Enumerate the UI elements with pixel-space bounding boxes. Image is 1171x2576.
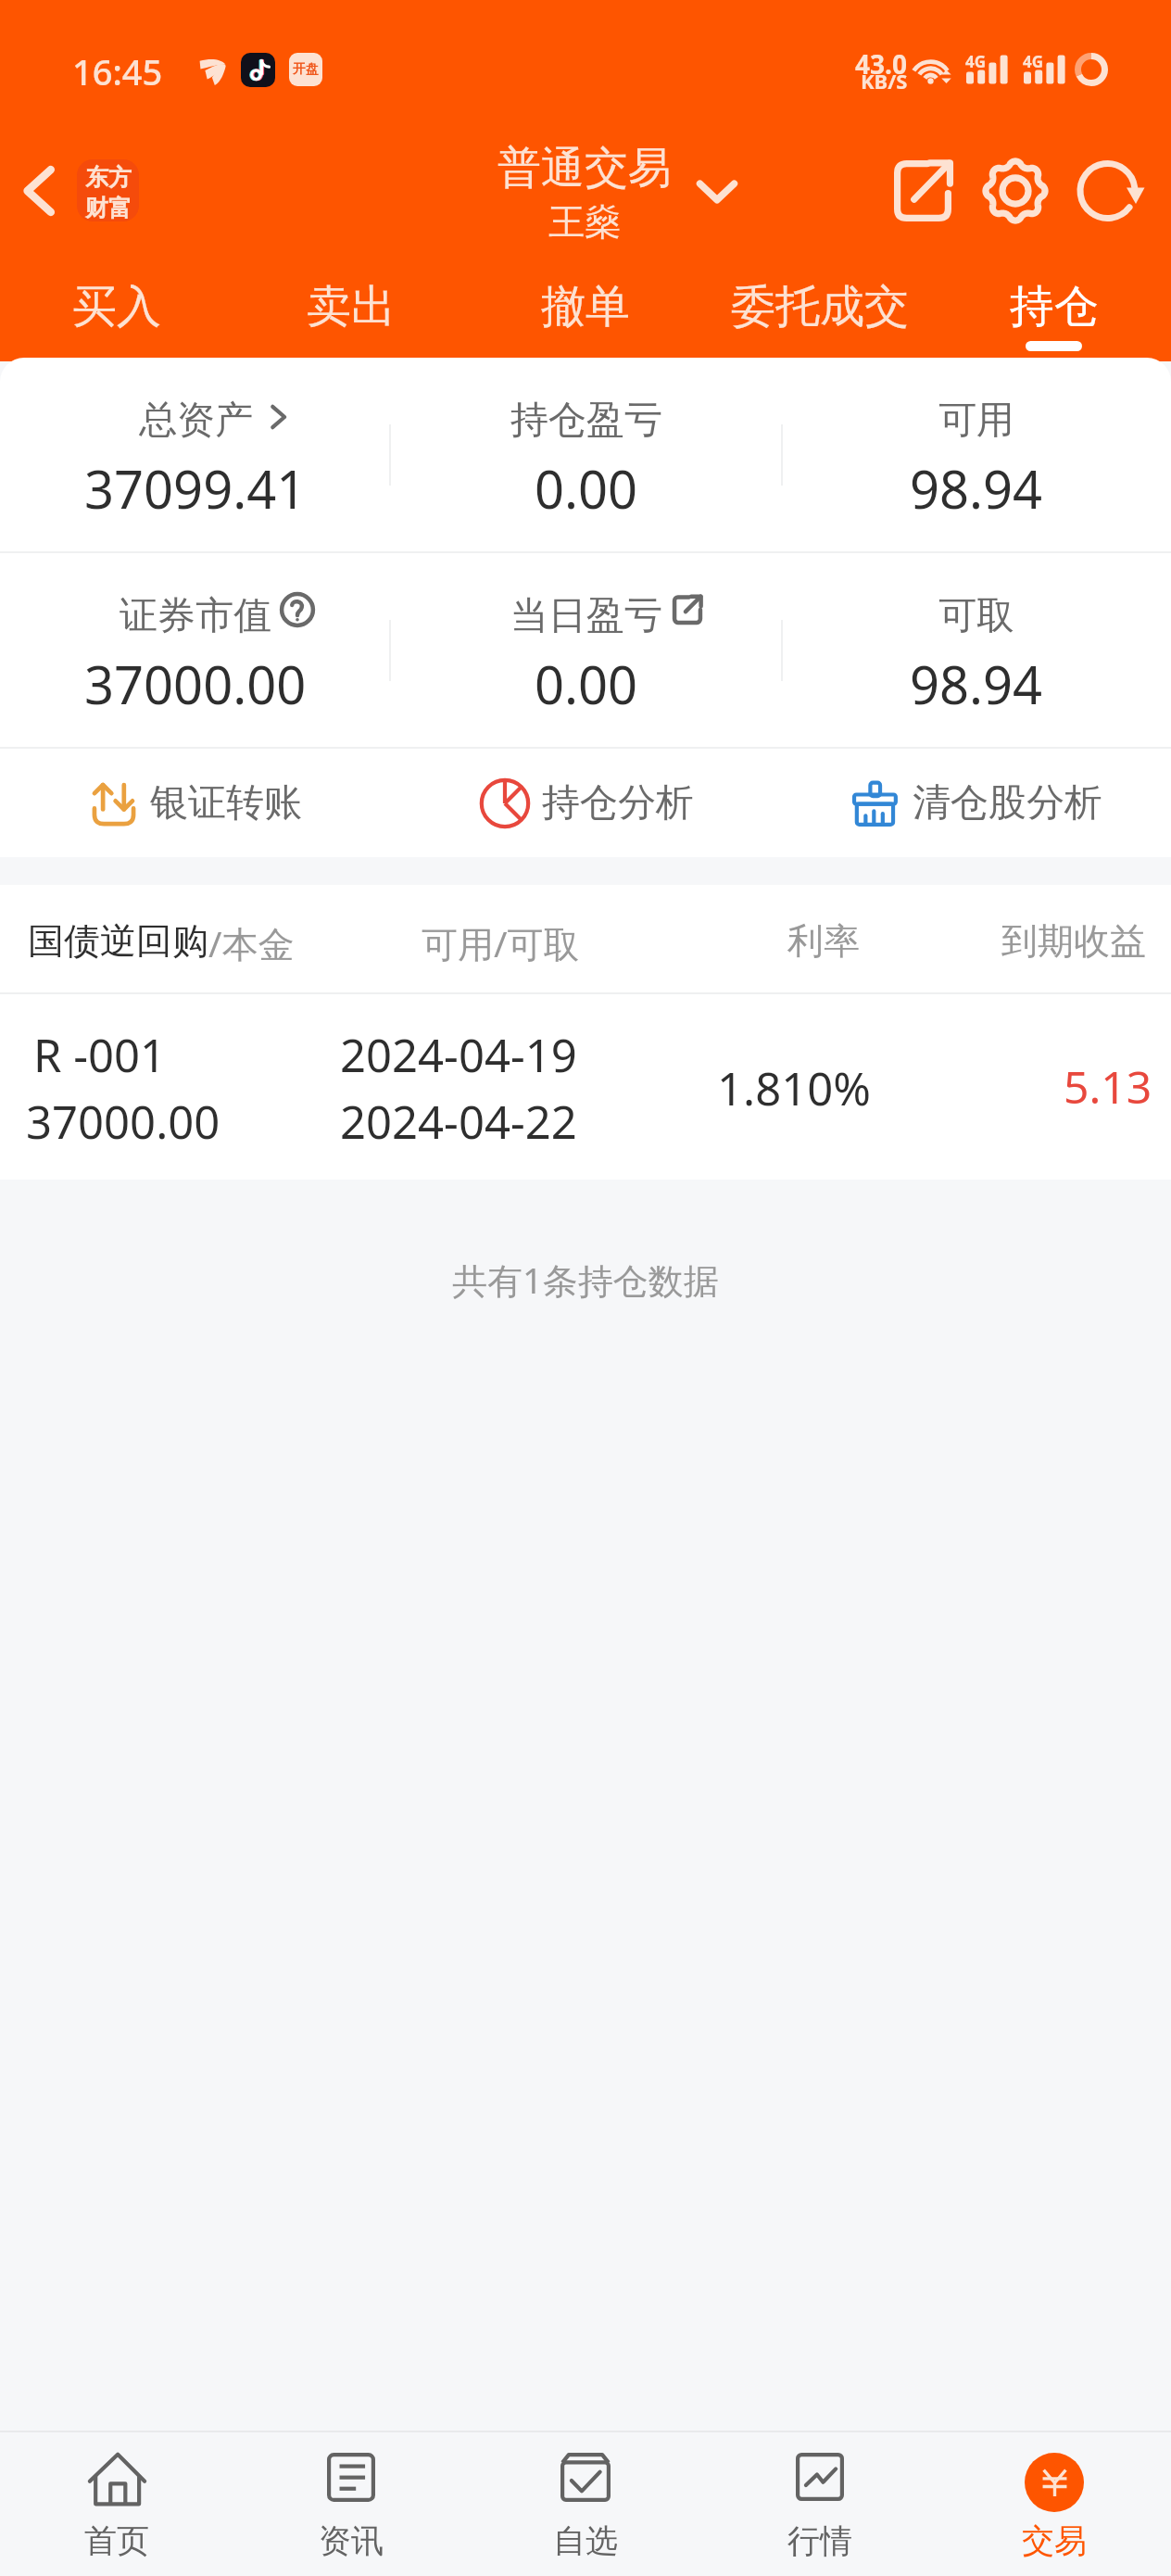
button[interactable]: Settings — [974, 149, 1057, 233]
staticText: 总资产 — [139, 397, 253, 445]
button[interactable]: R -001 — [0, 994, 1171, 1180]
staticText: 卖出 — [307, 279, 396, 335]
button[interactable]: 当日盈亏 — [391, 553, 781, 747]
button[interactable]: 可取 — [781, 553, 1171, 747]
button[interactable]: 东方 — [13, 150, 148, 231]
staticText: 37099.41 — [84, 453, 307, 524]
button[interactable]: 可用 — [781, 358, 1171, 551]
staticText: R -001 — [33, 1024, 167, 1086]
button[interactable]: 自选 — [468, 2432, 702, 2576]
staticText: 开盘 — [293, 61, 319, 78]
staticText: 98.94 — [910, 649, 1043, 719]
staticText: 98.94 — [910, 453, 1043, 524]
staticText: 买入 — [72, 279, 161, 335]
staticText: KB/S — [861, 67, 908, 95]
staticText: 持仓盈亏 — [510, 397, 662, 445]
staticText: 撤单 — [541, 279, 630, 335]
staticText: 资讯 — [319, 2520, 384, 2561]
staticText: 普通交易 — [497, 141, 672, 196]
staticText: 可取 — [938, 592, 1014, 640]
staticText: 国债逆回购 — [28, 918, 208, 964]
staticText: 当日盈亏 — [510, 592, 662, 640]
staticText: 银证转账 — [150, 779, 302, 827]
staticText: 东方 — [85, 163, 132, 192]
staticText: 自选 — [553, 2520, 618, 2561]
staticText: 4G — [965, 51, 987, 72]
button[interactable]: 银证转账 — [0, 749, 391, 857]
staticText: 5.13 — [1064, 1056, 1152, 1117]
button[interactable]: Refresh — [1068, 149, 1152, 233]
staticText: 财富 — [85, 194, 132, 221]
staticText: 行情 — [787, 2520, 852, 2561]
staticText: 利率 — [787, 918, 860, 964]
staticText: 可用/可取 — [422, 918, 580, 967]
staticText: 1.810% — [717, 1057, 871, 1119]
staticText: 清仓股分析 — [913, 779, 1102, 827]
button[interactable]: 持仓 — [937, 250, 1171, 358]
staticText: 37000.00 — [26, 1091, 220, 1153]
staticText: 0.00 — [535, 453, 638, 524]
button[interactable]: 持仓分析 — [391, 749, 781, 857]
button[interactable]: 持仓盈亏 — [391, 358, 781, 551]
staticText: 委托成交 — [731, 279, 909, 335]
staticText: 2024-04-19 — [340, 1024, 577, 1086]
staticText: 43.0 — [855, 46, 907, 82]
staticText: 0.00 — [535, 649, 638, 719]
staticText: 可用 — [938, 397, 1014, 445]
staticText: 到期收益 — [1001, 918, 1146, 964]
button[interactable]: 普通交易 — [422, 133, 748, 188]
staticText: 4G — [1023, 51, 1044, 72]
staticText: 持仓分析 — [542, 779, 694, 827]
staticText: 首页 — [84, 2520, 149, 2561]
button[interactable]: 清仓股分析 — [781, 749, 1171, 857]
staticText: 16:45 — [72, 47, 163, 95]
button[interactable]: 行情 — [702, 2432, 937, 2576]
button[interactable]: 买入 — [0, 250, 233, 358]
staticText: 持仓 — [1010, 279, 1099, 335]
staticText: /本金 — [208, 918, 295, 967]
staticText: 交易 — [1022, 2520, 1087, 2561]
button[interactable]: 证券市值 — [0, 553, 391, 747]
button[interactable]: 撤单 — [468, 250, 702, 358]
button[interactable]: 资讯 — [233, 2432, 468, 2576]
staticText: 37000.00 — [84, 649, 307, 719]
staticText: 证券市值 — [120, 592, 271, 640]
button[interactable]: 首页 — [0, 2432, 233, 2576]
staticText: 2024-04-22 — [340, 1091, 577, 1153]
button[interactable]: 委托成交 — [702, 250, 937, 358]
button[interactable]: 总资产 — [0, 358, 391, 551]
staticText: 王燊 — [548, 199, 621, 245]
staticText: 共有1条持仓数据 — [452, 1256, 719, 1304]
button[interactable]: Share — [881, 149, 964, 233]
button[interactable]: 卖出 — [233, 250, 468, 358]
button[interactable]: 交易 — [937, 2432, 1171, 2576]
